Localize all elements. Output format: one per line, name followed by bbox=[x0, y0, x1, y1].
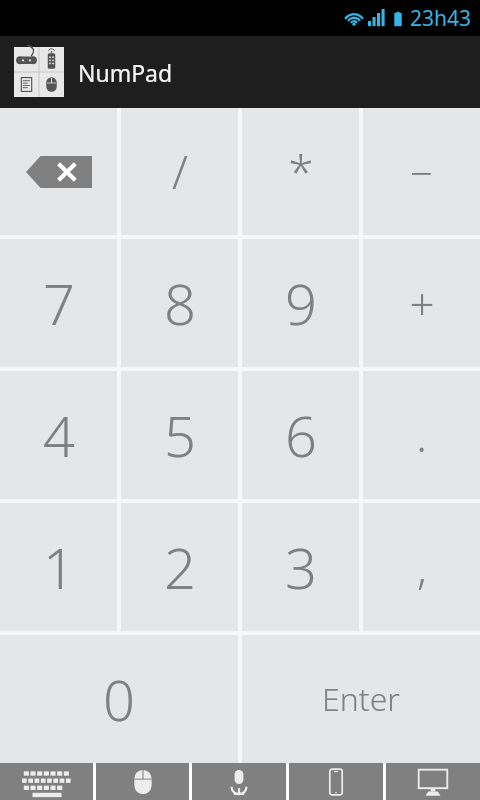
staticText: 0 bbox=[103, 661, 135, 737]
staticText: Enter bbox=[322, 677, 400, 721]
button[interactable]: Backspace bbox=[0, 108, 117, 235]
staticText: 2 bbox=[164, 529, 196, 605]
button[interactable]: + bbox=[363, 239, 480, 367]
staticText: 9 bbox=[285, 265, 317, 341]
button[interactable]: 7 bbox=[0, 239, 117, 367]
button[interactable]: 3 bbox=[242, 503, 359, 631]
staticText: . bbox=[416, 405, 427, 465]
staticText: 4 bbox=[43, 397, 75, 473]
staticText: * bbox=[288, 140, 314, 203]
staticText: 8 bbox=[164, 265, 196, 341]
button[interactable]: − bbox=[363, 108, 480, 235]
button[interactable]: Phone bbox=[289, 763, 383, 800]
button[interactable]: 9 bbox=[242, 239, 359, 367]
staticText: 6 bbox=[285, 397, 317, 473]
button[interactable]: Mouse bbox=[96, 763, 189, 800]
button[interactable]: Enter bbox=[242, 635, 480, 763]
button[interactable]: 1 bbox=[0, 503, 117, 631]
button[interactable]: 0 bbox=[0, 635, 238, 763]
staticText: / bbox=[172, 140, 188, 203]
button[interactable]: Keyboard bbox=[0, 763, 93, 800]
staticText: NumPad bbox=[78, 57, 173, 88]
button[interactable]: 4 bbox=[0, 371, 117, 499]
button[interactable]: , bbox=[363, 503, 480, 631]
button[interactable]: 5 bbox=[121, 371, 238, 499]
button[interactable]: Monitor bbox=[386, 763, 480, 800]
staticText: 7 bbox=[43, 265, 75, 341]
button[interactable]: 6 bbox=[242, 371, 359, 499]
staticText: , bbox=[417, 537, 427, 597]
button[interactable]: * bbox=[242, 108, 359, 235]
button[interactable]: / bbox=[121, 108, 238, 235]
staticText: 3 bbox=[285, 529, 317, 605]
button[interactable]: 8 bbox=[121, 239, 238, 367]
staticText: − bbox=[410, 145, 433, 199]
button[interactable]: Microphone bbox=[192, 763, 286, 800]
staticText: 23h43 bbox=[410, 4, 472, 33]
staticText: + bbox=[409, 273, 435, 333]
staticText: 5 bbox=[164, 397, 196, 473]
button[interactable]: 2 bbox=[121, 503, 238, 631]
staticText: 1 bbox=[43, 529, 75, 605]
